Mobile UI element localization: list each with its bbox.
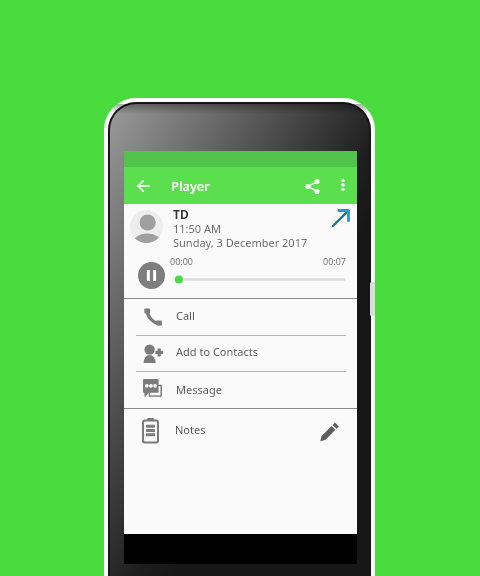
button[interactable]: Share — [298, 172, 326, 200]
staticText: Add to Contacts — [176, 344, 258, 359]
button[interactable]: Edit notes — [319, 421, 340, 442]
staticText: 00:07 — [323, 255, 347, 267]
button[interactable]: More options — [330, 172, 356, 198]
staticText: Call — [176, 308, 195, 323]
staticText: Sunday, 3 December 2017 — [173, 235, 308, 250]
button[interactable]: Call — [124, 299, 357, 335]
staticText: Message — [176, 382, 222, 397]
staticText: Notes — [175, 422, 206, 437]
button[interactable]: Pause — [138, 262, 165, 289]
button[interactable]: Notes — [124, 409, 357, 456]
staticText: Player — [171, 177, 210, 195]
button[interactable]: Add to Contacts — [124, 336, 357, 371]
staticText: 00:00 — [170, 255, 194, 267]
staticText: 11:50 AM — [173, 221, 221, 236]
button[interactable]: Message — [124, 372, 357, 408]
button[interactable]: Back — [129, 172, 157, 200]
button[interactable]: Outgoing call — [330, 208, 351, 229]
staticText: TD — [173, 206, 189, 222]
